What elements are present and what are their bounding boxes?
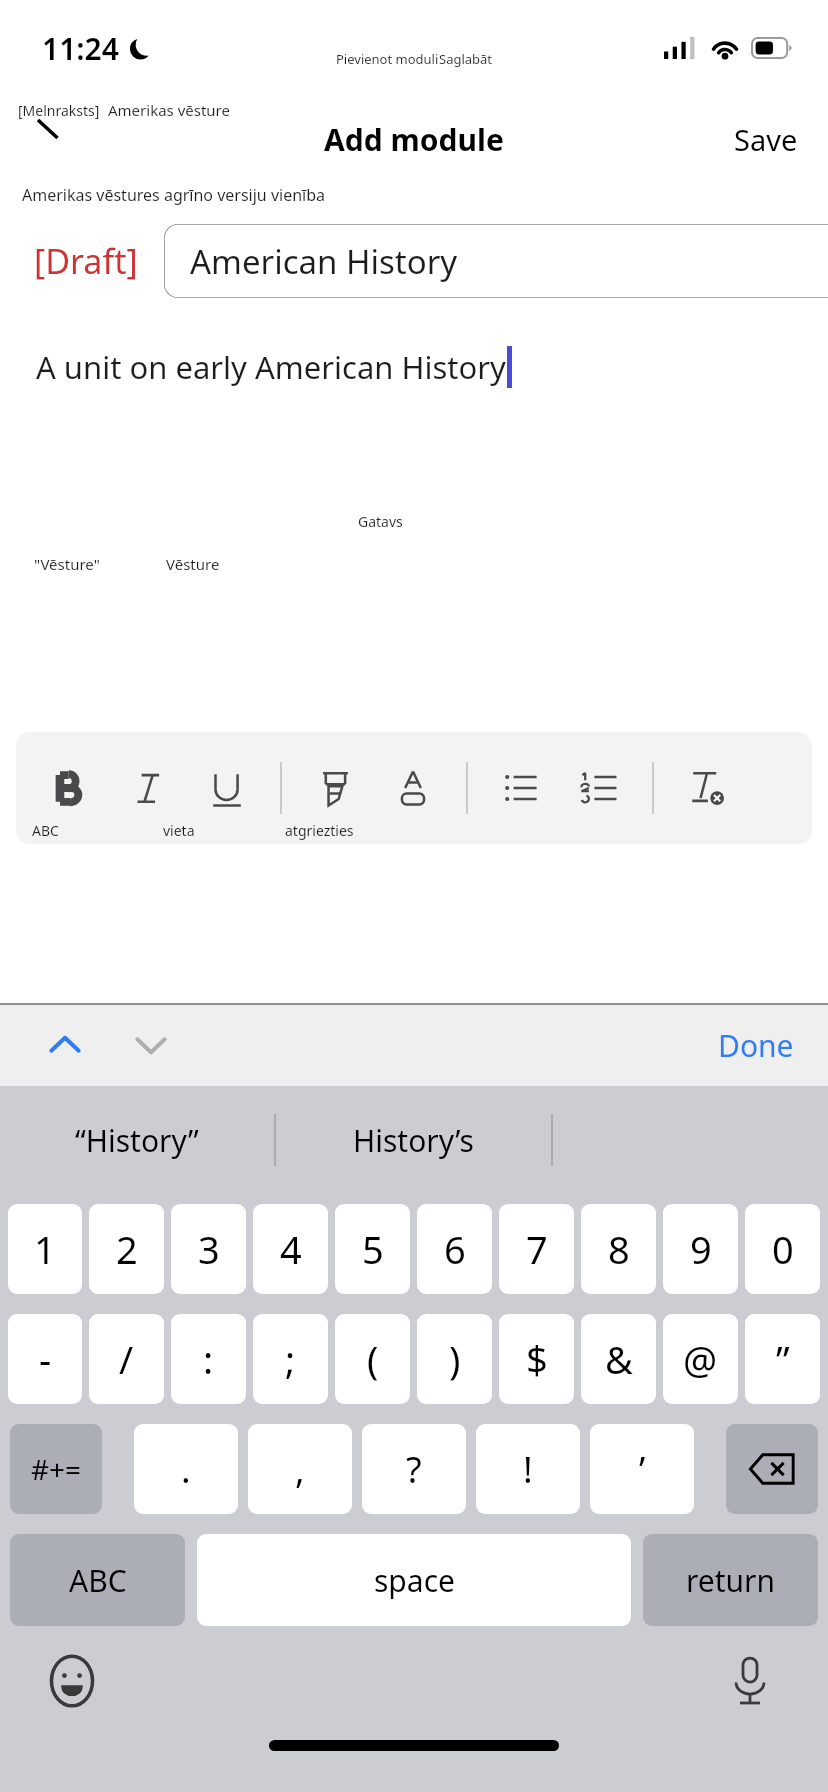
staticText: Saglabāt (439, 50, 493, 68)
staticText: ABC (69, 1560, 127, 1601)
staticText: ’ (639, 1445, 646, 1494)
button[interactable]: Highlight (296, 746, 374, 830)
button[interactable]: : (171, 1314, 246, 1404)
button[interactable]: ; (253, 1314, 328, 1404)
button[interactable]: . (134, 1424, 238, 1514)
staticText: @ (683, 1333, 718, 1385)
button[interactable]: ! (476, 1424, 580, 1514)
button[interactable]: Save (704, 108, 828, 171)
button[interactable]: 8 (581, 1204, 656, 1294)
staticText: / (119, 1333, 134, 1385)
button[interactable]: A unit on early American History (0, 332, 828, 732)
button[interactable]: 4 (253, 1204, 328, 1294)
button[interactable]: 5 (335, 1204, 410, 1294)
button[interactable]: ) (417, 1314, 492, 1404)
staticText: 9 (690, 1223, 712, 1275)
button[interactable]: Backspace (726, 1424, 818, 1514)
button[interactable]: space (197, 1534, 631, 1626)
staticText: American History (190, 239, 458, 284)
staticText: Vēsture (166, 554, 220, 574)
staticText: "Vēsture" (34, 554, 100, 574)
staticText: Amerikas vēsture (108, 100, 230, 120)
staticText: 2 (116, 1223, 138, 1275)
button[interactable]: Underline (188, 746, 266, 830)
button[interactable]: ? (362, 1424, 466, 1514)
button[interactable]: ( (335, 1314, 410, 1404)
button[interactable]: 1 (8, 1204, 82, 1294)
button[interactable]: 0 (745, 1204, 820, 1294)
staticText: [Melnraksts] (18, 101, 100, 120)
staticText: A unit on early American History (36, 346, 506, 388)
staticText: 7 (526, 1223, 548, 1275)
staticText: : (203, 1333, 214, 1385)
button[interactable]: Previous field (30, 1013, 100, 1077)
staticText: Save (734, 120, 798, 159)
staticText: . (181, 1445, 191, 1494)
staticText: 8 (608, 1223, 630, 1275)
button[interactable]: ABC (10, 1534, 185, 1626)
staticText: ! (523, 1445, 533, 1494)
button[interactable]: ’ (590, 1424, 694, 1514)
staticText: 3 (198, 1223, 220, 1275)
button[interactable]: Numbered list (560, 746, 638, 830)
staticText: Done (718, 1025, 794, 1066)
button[interactable]: Done (704, 1015, 808, 1076)
staticText: ) (449, 1333, 461, 1385)
button[interactable]: return (643, 1534, 818, 1626)
button[interactable]: $ (499, 1314, 574, 1404)
staticText: 1 (34, 1223, 56, 1275)
button[interactable]: Bold (32, 746, 110, 830)
staticText: 4 (280, 1223, 302, 1275)
button[interactable]: 7 (499, 1204, 574, 1294)
staticText: Gatavs (358, 512, 403, 531)
staticText: ( (367, 1333, 379, 1385)
button[interactable]: / (89, 1314, 164, 1404)
button[interactable]: 3 (171, 1204, 246, 1294)
button[interactable]: Clear formatting (668, 746, 746, 830)
button[interactable]: , (248, 1424, 352, 1514)
staticText: 0 (772, 1223, 794, 1275)
staticText: Pievienot moduli (336, 50, 439, 68)
staticText: vieta (163, 821, 195, 840)
staticText: History’s (353, 1120, 474, 1161)
button[interactable]: - (8, 1314, 82, 1404)
button[interactable]: Italic (110, 746, 188, 830)
staticText: Amerikas vēstures agrīno versiju vienība (22, 184, 326, 206)
staticText: “History” (75, 1120, 199, 1161)
staticText: return (686, 1560, 776, 1601)
staticText: ; (285, 1333, 296, 1385)
button[interactable]: American History (164, 224, 828, 298)
staticText: Add module (324, 119, 504, 160)
button[interactable]: Bulleted list (482, 746, 560, 830)
button[interactable]: ” (745, 1314, 820, 1404)
staticText: & (605, 1333, 633, 1385)
staticText: 5 (362, 1223, 384, 1275)
button[interactable]: Dictation (718, 1649, 782, 1713)
staticText: [Draft] (34, 238, 138, 284)
button[interactable]: 9 (663, 1204, 738, 1294)
button[interactable]: 2 (89, 1204, 164, 1294)
button[interactable]: “History” (0, 1086, 274, 1194)
staticText: 6 (444, 1223, 466, 1275)
button[interactable]: Text color (374, 746, 452, 830)
button[interactable]: @ (663, 1314, 738, 1404)
button[interactable]: Next field (116, 1013, 186, 1077)
staticText: , (295, 1445, 305, 1494)
button[interactable]: & (581, 1314, 656, 1404)
button[interactable]: #+= (10, 1424, 102, 1514)
staticText: ? (406, 1445, 422, 1494)
button[interactable]: History’s (276, 1086, 551, 1194)
staticText: space (374, 1560, 455, 1601)
staticText: ABC (32, 821, 59, 840)
staticText: ” (776, 1333, 790, 1385)
staticText: #+= (31, 1450, 82, 1488)
button[interactable]: 6 (417, 1204, 492, 1294)
staticText: 11:24 (42, 28, 119, 69)
staticText: atgriezties (285, 821, 354, 840)
button[interactable]: Emoji (40, 1649, 104, 1713)
staticText: - (39, 1333, 52, 1385)
staticText: $ (526, 1333, 548, 1385)
